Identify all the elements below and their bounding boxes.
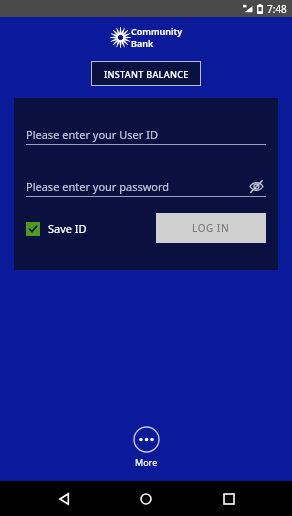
staticText: Community: [131, 25, 183, 37]
button[interactable]: Home: [127, 481, 165, 516]
staticText: More: [135, 456, 158, 468]
button[interactable]: Recents: [210, 481, 248, 516]
button[interactable]: INSTANT BALANCE: [91, 61, 201, 86]
staticText: Please enter your password: [26, 179, 170, 194]
staticText: INSTANT BALANCE: [104, 68, 189, 80]
button[interactable]: LOG IN: [156, 213, 266, 243]
staticText: Save ID: [48, 221, 87, 236]
button[interactable]: Back: [45, 481, 83, 516]
button[interactable]: Please enter your password: [26, 176, 266, 196]
staticText: Please enter your User ID: [26, 127, 158, 142]
staticText: Bank: [131, 37, 154, 49]
staticText: 7:48: [267, 2, 287, 16]
button[interactable]: Save ID: [26, 221, 87, 236]
button[interactable]: Please enter your User ID: [26, 124, 266, 144]
button[interactable]: More: [119, 423, 174, 471]
staticText: LOG IN: [192, 221, 230, 235]
button[interactable]: Show password: [246, 176, 266, 196]
